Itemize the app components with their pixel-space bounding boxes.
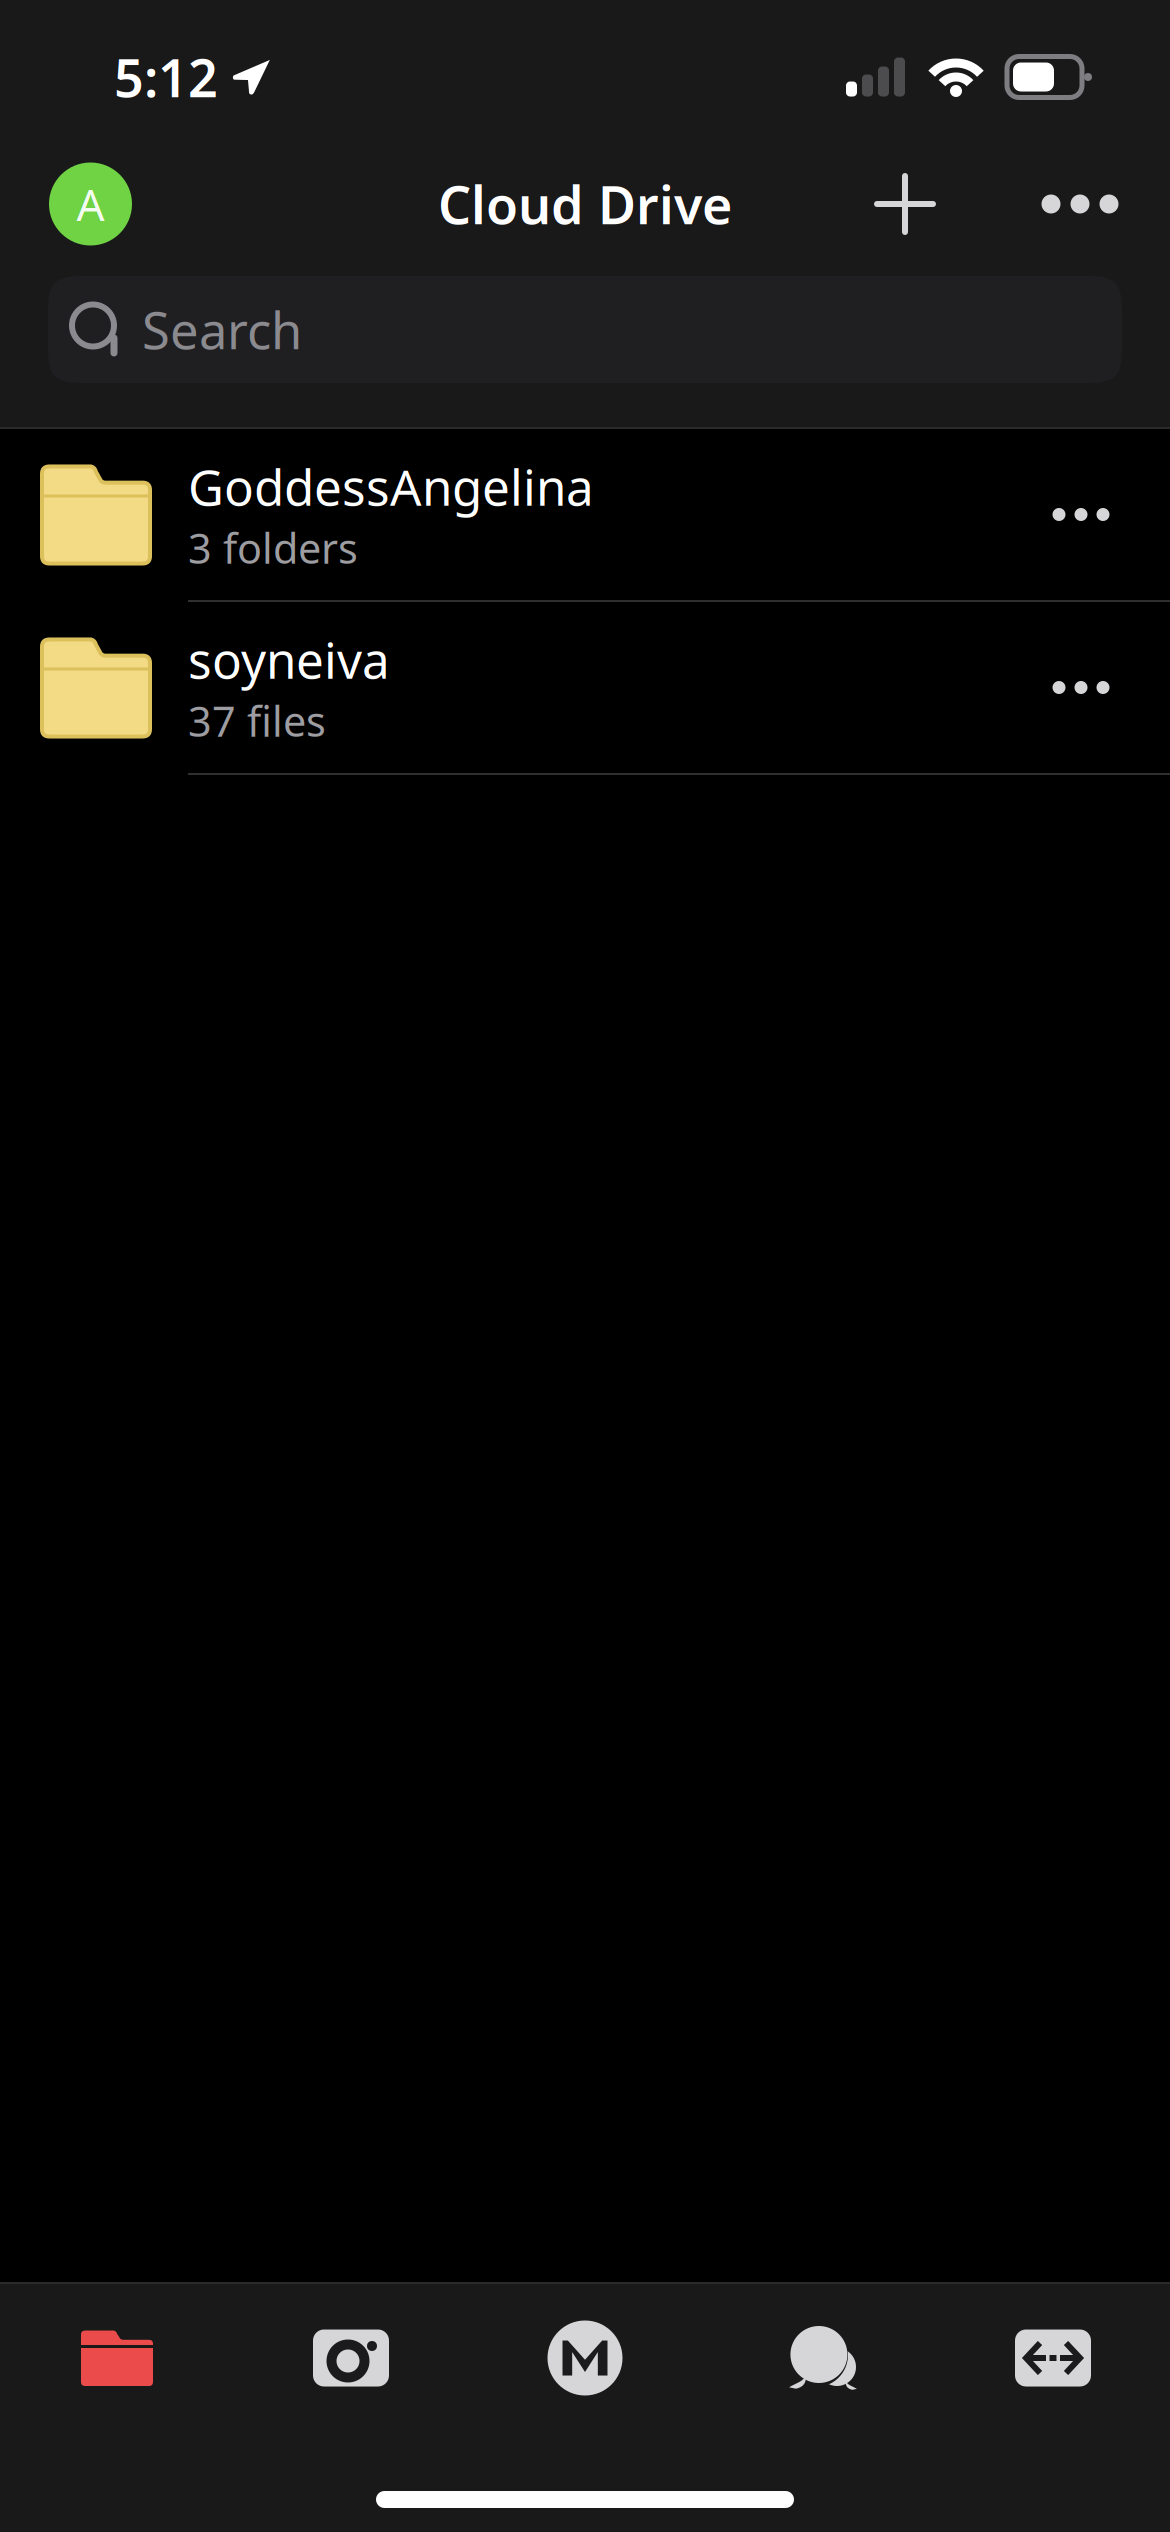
button[interactable]: Chat (702, 2284, 936, 2432)
staticText: Search (142, 296, 302, 363)
button[interactable]: soyneiva (0, 602, 1170, 773)
staticText: soyneiva (188, 627, 390, 692)
button[interactable]: Photos (234, 2284, 468, 2432)
button[interactable]: More options (1033, 157, 1127, 251)
button[interactable]: Home (468, 2284, 702, 2432)
button[interactable]: GoddessAngelina (0, 429, 1170, 600)
staticText: A (76, 175, 104, 233)
staticText: Cloud Drive (438, 169, 732, 239)
button[interactable]: Add (858, 157, 952, 251)
button[interactable]: Cloud Drive (0, 2284, 234, 2432)
staticText: GoddessAngelina (188, 454, 594, 519)
button[interactable]: Search (48, 276, 1122, 383)
button[interactable]: Account (49, 162, 132, 245)
staticText: 3 folders (188, 520, 358, 575)
staticText: 37 files (188, 693, 326, 748)
button[interactable]: Transfers (936, 2284, 1170, 2432)
staticText: 5:12 (114, 42, 218, 112)
